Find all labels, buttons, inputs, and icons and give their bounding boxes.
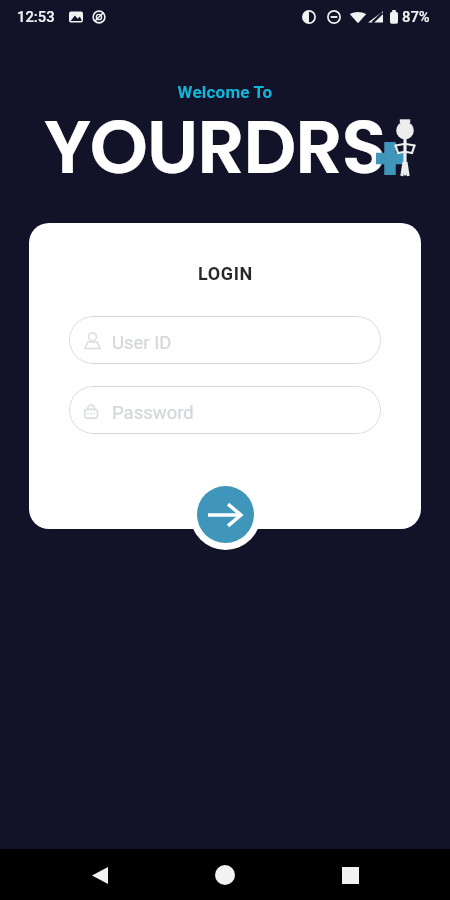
- staticText: LOGIN: [198, 263, 253, 284]
- staticText: User ID: [112, 332, 172, 354]
- staticText: 12:53: [17, 8, 55, 25]
- button[interactable]: Sign in: [197, 486, 254, 543]
- staticText: 87%: [402, 8, 430, 25]
- button[interactable]: User ID: [69, 316, 381, 364]
- button[interactable]: Home: [205, 855, 245, 895]
- button[interactable]: Recents: [330, 855, 370, 895]
- staticText: Password: [112, 402, 194, 424]
- button[interactable]: Back: [80, 855, 120, 895]
- staticText: Welcome To: [0, 82, 450, 102]
- staticText: YOURDRS: [44, 95, 386, 199]
- button[interactable]: Password: [69, 386, 381, 434]
